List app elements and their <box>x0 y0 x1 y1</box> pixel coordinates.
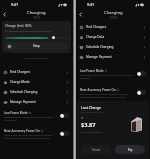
staticText: Edit / View a 3D details <box>81 131 103 134</box>
staticText: Charging <box>104 10 123 16</box>
staticText: 100 % <box>110 16 118 20</box>
button[interactable]: Manage Payment <box>76 52 150 62</box>
staticText: Start Charging Now <box>0 56 73 59</box>
staticText: Pay <box>128 148 133 152</box>
staticText: Near Accessory Power On <box>4 129 40 133</box>
staticText: Charge limit 80% <box>5 24 32 28</box>
staticText: Stop <box>33 44 40 48</box>
staticText: Power on your vehicle when an accessory … <box>4 134 56 140</box>
staticText: Charge Mode <box>10 80 30 84</box>
button[interactable]: Charge Mode <box>0 77 73 87</box>
button[interactable]: Schedule Charging <box>76 42 150 52</box>
staticText: Disable energy consuming features and sa… <box>80 74 133 80</box>
button[interactable]: Charge Data <box>76 32 150 42</box>
button[interactable]: Stop <box>5 42 68 50</box>
staticText: Charging <box>27 10 46 16</box>
staticText: Details <box>92 148 101 152</box>
button[interactable]: Pay <box>115 145 145 154</box>
staticText: Low Power Mode <box>80 69 104 73</box>
staticText: Charge Data <box>86 35 105 39</box>
staticText: Schedule Charging <box>86 45 114 49</box>
button[interactable]: Near Accessory Power On <box>76 86 150 101</box>
staticText: Last Charge <box>81 105 102 110</box>
button[interactable]: Near Accessory Power On <box>0 127 73 142</box>
staticText: Low Power Mode <box>4 111 28 115</box>
staticText: Near Accessory Power On <box>80 88 116 92</box>
staticText: 9:41 <box>87 2 95 7</box>
staticText: Disable energy consuming features and sa… <box>4 116 56 122</box>
button[interactable]: Schedule Charging <box>0 87 73 97</box>
button[interactable]: Find Chargers <box>0 67 73 77</box>
button[interactable]: Find Chargers <box>76 22 150 32</box>
staticText: 100 % <box>33 16 41 20</box>
staticText: Find Chargers <box>10 70 31 74</box>
button[interactable]: Back <box>0 10 9 19</box>
staticText: Schedule Charging <box>10 90 38 94</box>
staticText: Jun 1, 2024 at 4:31 PM <box>81 111 103 114</box>
staticText: Find Chargers <box>86 25 107 29</box>
staticText: 9:41 <box>11 2 19 7</box>
button[interactable]: Low Power Mode <box>0 109 73 124</box>
staticText: Set the optimal level to keep charging s… <box>5 30 51 33</box>
staticText: Power on your vehicle when an accessory … <box>80 93 133 99</box>
button[interactable]: Back <box>76 10 85 19</box>
button[interactable]: Low Power Mode <box>76 67 150 82</box>
button[interactable]: Manage Payment <box>0 97 73 107</box>
button[interactable]: Details <box>81 145 111 154</box>
staticText: Manage Payment <box>86 55 112 59</box>
staticText: $3.87 <box>81 121 96 129</box>
staticText: Manage Payment <box>10 100 36 104</box>
